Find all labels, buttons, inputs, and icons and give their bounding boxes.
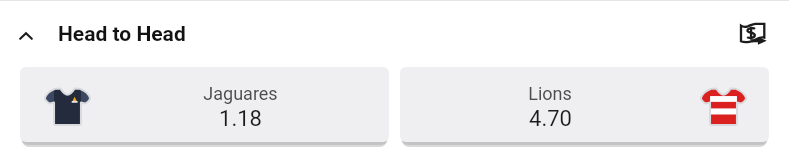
button[interactable]: Head to Head	[0, 0, 202, 67]
staticText: Jaguares	[203, 83, 278, 104]
staticText: 4.70	[529, 106, 572, 132]
button[interactable]: Jaguares	[20, 67, 389, 142]
button[interactable]: Cash out	[731, 0, 777, 67]
staticText: Head to Head	[58, 22, 186, 47]
staticText: Lions	[528, 83, 572, 104]
staticText: 1.18	[219, 106, 262, 132]
button[interactable]: Lions	[400, 67, 769, 142]
